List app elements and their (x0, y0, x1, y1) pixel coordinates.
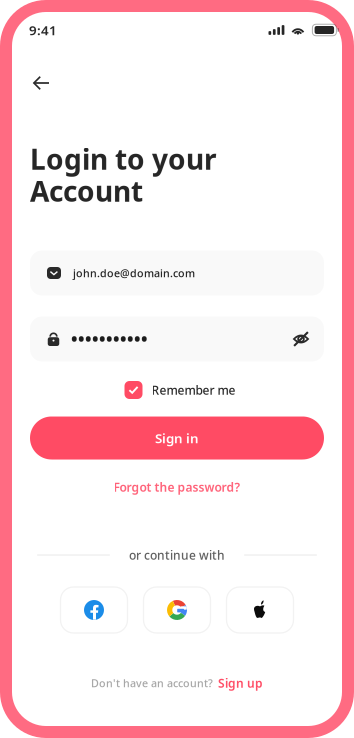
staticText: ••••••••••• (71, 327, 148, 350)
staticText: Sign up (218, 675, 263, 691)
staticText: Account (30, 172, 143, 210)
staticText: Forgot the password? (113, 479, 240, 495)
staticText: or continue with (129, 547, 225, 563)
staticText: Remember me (151, 382, 235, 398)
button[interactable]: Remember me (124, 381, 235, 399)
staticText: Login to your (30, 140, 217, 178)
button[interactable]: Continue with Google (143, 587, 210, 633)
button[interactable]: Sign in (30, 416, 324, 459)
button[interactable]: Continue with Apple (226, 587, 293, 633)
staticText: Sign in (155, 429, 199, 447)
button[interactable]: Back (21, 63, 61, 103)
staticText: 9:41 (29, 21, 57, 39)
staticText: john.doe@domain.com (73, 266, 195, 280)
button[interactable]: Forgot the password? (107, 473, 246, 501)
button[interactable]: Sign up (218, 675, 263, 691)
button[interactable]: Continue with Facebook (60, 587, 127, 633)
staticText: Don't have an account? (91, 676, 213, 690)
button[interactable]: Show password (288, 326, 314, 352)
